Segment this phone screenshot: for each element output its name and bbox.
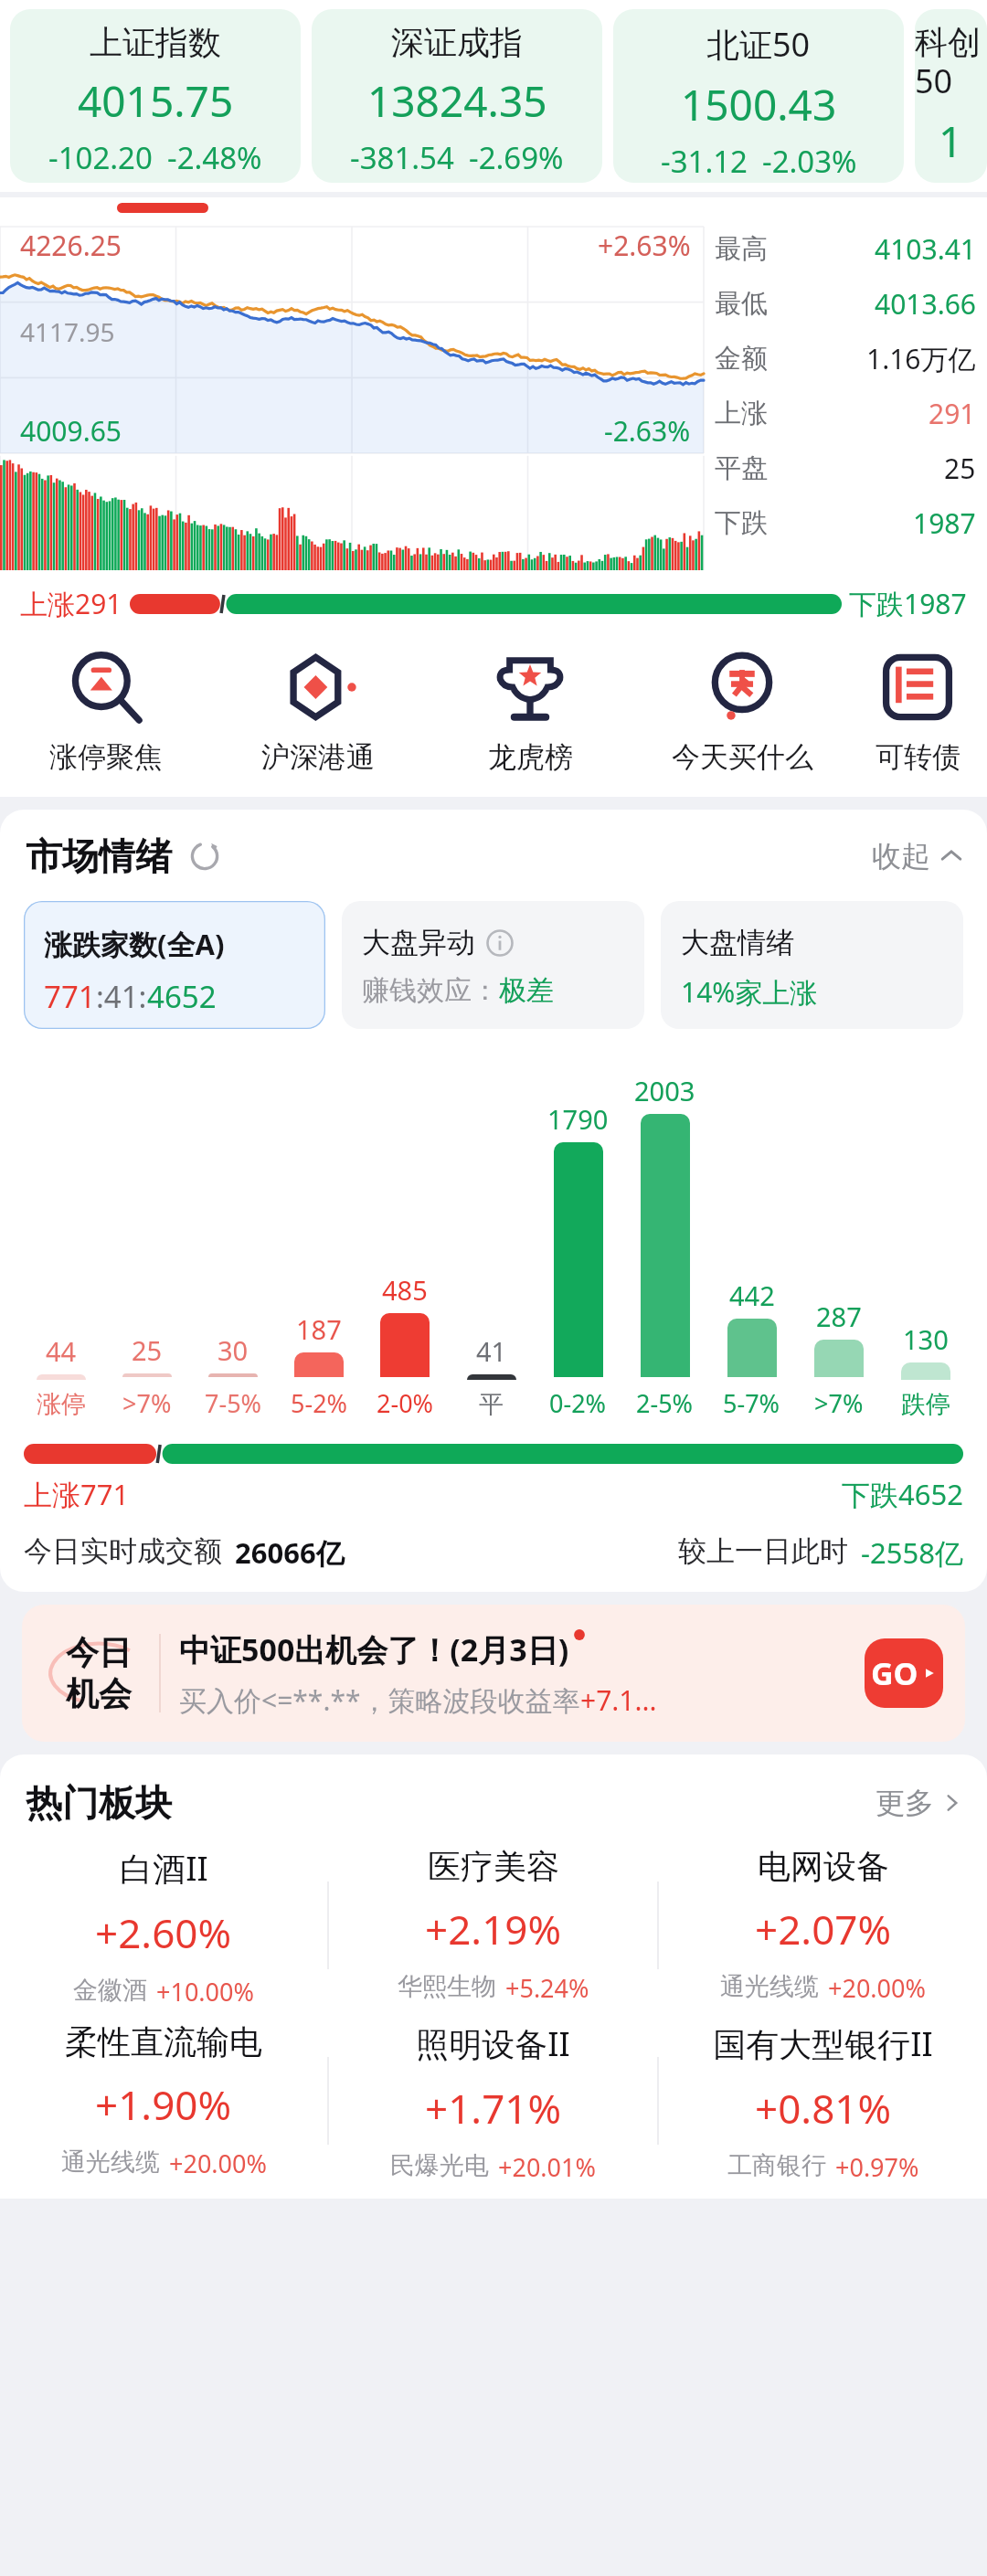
staticText: 科创50 xyxy=(915,22,987,103)
button[interactable]: 485 xyxy=(362,1272,448,1420)
button[interactable]: 北证50 xyxy=(613,9,904,183)
button[interactable]: Refresh xyxy=(186,838,223,875)
staticText: 华熙生物 xyxy=(398,1971,496,2002)
staticText: 2-0% xyxy=(377,1386,434,1420)
staticText: 130 xyxy=(903,1321,949,1357)
button[interactable]: 更多 xyxy=(876,1785,963,1821)
staticText: 大盘异动 xyxy=(362,925,475,960)
button[interactable]: 平盘 xyxy=(715,440,976,495)
staticText: 医疗美容 xyxy=(428,1846,559,1887)
button[interactable]: 今日 xyxy=(22,1605,965,1742)
staticText: 4226.25 xyxy=(20,227,122,264)
staticText: 14%家上涨 xyxy=(681,973,818,1011)
staticText: +1.71% xyxy=(425,2081,562,2136)
button[interactable]: 287 xyxy=(795,1299,882,1420)
staticText: 25 xyxy=(132,1332,163,1368)
button[interactable]: 最低 xyxy=(715,276,976,331)
button[interactable]: 最高 xyxy=(715,221,976,276)
button[interactable]: 30 xyxy=(190,1332,276,1420)
button[interactable]: 照明设备II xyxy=(329,2021,657,2180)
staticText: 中证500出机会了！(2月3日) xyxy=(179,1628,569,1670)
button[interactable]: 2003 xyxy=(621,1073,708,1420)
staticText: 下跌1987 xyxy=(849,585,967,622)
button[interactable]: 沪深港通 xyxy=(212,642,424,780)
button[interactable]: 白酒II xyxy=(0,1846,327,2005)
button[interactable]: 龙虎榜 xyxy=(424,642,636,780)
staticText: 平盘 xyxy=(715,451,768,485)
staticText: 13824.35 xyxy=(367,72,547,130)
staticText: +1.90% xyxy=(95,2077,232,2132)
staticText: 291 xyxy=(929,395,976,432)
staticText: 通光线缆 xyxy=(720,1971,819,2002)
staticText: 龙虎榜 xyxy=(488,739,573,775)
staticText: 2-5% xyxy=(636,1386,694,1420)
staticText: 1987 xyxy=(913,504,976,542)
staticText: >7% xyxy=(122,1386,172,1420)
staticText: 上涨 xyxy=(715,397,768,430)
button[interactable]: 4226.25 xyxy=(0,217,704,572)
staticText: +10.00% xyxy=(156,1975,254,2005)
button[interactable]: 涨停聚焦 xyxy=(0,642,212,780)
staticText: +5.24% xyxy=(505,1971,589,2005)
staticText: 287 xyxy=(816,1299,862,1334)
staticText: :41: xyxy=(96,976,147,1017)
button[interactable]: 金额 xyxy=(715,331,976,386)
staticText: 25 xyxy=(944,450,976,487)
staticText: +20.01% xyxy=(498,2150,596,2180)
staticText: 上证指数 xyxy=(90,22,221,63)
button[interactable]: 44 xyxy=(18,1333,104,1420)
staticText: 今日实时成交额 xyxy=(24,1533,222,1569)
staticText: 4013.66 xyxy=(875,285,976,323)
staticText: 0-2% xyxy=(549,1386,607,1420)
staticText: GO xyxy=(871,1652,918,1694)
button[interactable]: 大盘异动 xyxy=(342,901,644,1029)
staticText: 金额 xyxy=(715,342,768,376)
staticText: 1500.43 xyxy=(681,76,837,133)
button[interactable]: 今天买什么 xyxy=(636,642,848,780)
button[interactable]: 科创50 xyxy=(915,9,987,183)
staticText: 北证50 xyxy=(706,22,811,67)
button[interactable]: 187 xyxy=(276,1311,362,1420)
staticText: 下跌 xyxy=(715,506,768,540)
staticText: >7% xyxy=(814,1386,864,1420)
staticText: +0.97% xyxy=(835,2150,919,2180)
button[interactable]: 深证成指 xyxy=(312,9,602,183)
staticText: 通光线缆 xyxy=(61,2147,160,2178)
button[interactable]: 柔性直流输电 xyxy=(0,2021,327,2180)
button[interactable]: 大盘情绪 xyxy=(661,901,963,1029)
button[interactable]: 可转债 xyxy=(848,642,987,780)
button[interactable]: 1790 xyxy=(535,1101,621,1420)
button[interactable]: 上涨 xyxy=(715,386,976,440)
staticText: 大盘情绪 xyxy=(681,925,794,960)
staticText: 收起 xyxy=(872,838,930,875)
staticText: 485 xyxy=(382,1272,428,1308)
staticText: +2.63% xyxy=(598,227,691,264)
staticText: -72 xyxy=(921,177,966,183)
staticText: 可转债 xyxy=(876,739,960,775)
staticText: +2.19% xyxy=(425,1902,562,1956)
staticText: -381.54 xyxy=(350,137,454,178)
staticText: 最高 xyxy=(715,232,768,266)
button[interactable]: 25 xyxy=(104,1332,190,1420)
button[interactable]: 上证指数 xyxy=(10,9,301,183)
button[interactable]: 电网设备 xyxy=(659,1846,987,2005)
staticText: 金徽酒 xyxy=(73,1975,147,2005)
button[interactable]: 涨跌家数(全A) xyxy=(24,901,325,1029)
staticText: 771 xyxy=(44,976,96,1017)
button[interactable]: 442 xyxy=(708,1277,795,1420)
staticText: 2003 xyxy=(634,1073,695,1108)
staticText: 涨跌家数(全A) xyxy=(44,925,225,963)
staticText: 5-7% xyxy=(723,1386,780,1420)
button[interactable]: 41 xyxy=(448,1333,535,1420)
button[interactable]: 收起 xyxy=(872,838,963,875)
staticText: 平 xyxy=(479,1389,504,1420)
staticText: 上涨771 xyxy=(24,1475,130,1513)
button[interactable]: 下跌 xyxy=(715,495,976,550)
staticText: 民爆光电 xyxy=(390,2150,489,2180)
staticText: 41 xyxy=(476,1333,507,1369)
staticText: 电网设备 xyxy=(758,1846,889,1887)
button[interactable]: GO xyxy=(865,1638,943,1708)
button[interactable]: 医疗美容 xyxy=(329,1846,657,2005)
button[interactable]: 国有大型银行II xyxy=(659,2021,987,2180)
button[interactable]: 130 xyxy=(882,1321,969,1420)
